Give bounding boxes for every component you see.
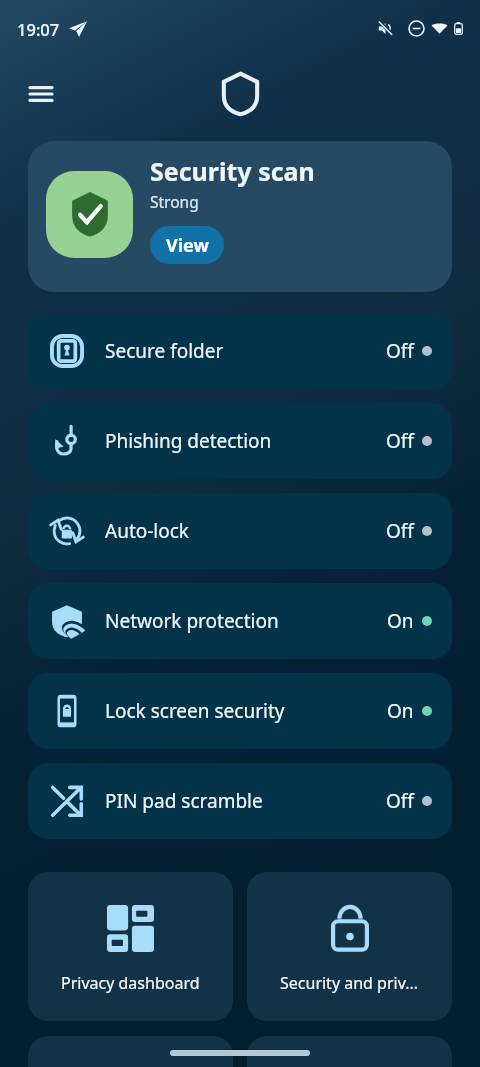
button[interactable]: Menu <box>19 72 63 116</box>
button[interactable]: Lock screen security <box>28 673 452 749</box>
button[interactable]: View <box>150 226 224 264</box>
button[interactable]: Security and priv... <box>247 872 452 1021</box>
staticText: 19:07 <box>17 18 60 40</box>
staticText: Lock screen security <box>105 698 387 724</box>
button[interactable]: Auto-lock <box>28 493 452 569</box>
button[interactable]: PIN pad scramble <box>28 763 452 839</box>
staticText: Auto-lock <box>105 518 386 544</box>
staticText: On <box>387 698 414 724</box>
staticText: PIN pad scramble <box>105 788 386 814</box>
staticText: Security and priv... <box>280 972 419 994</box>
staticText: On <box>387 608 414 634</box>
staticText: View <box>166 233 209 258</box>
staticText: Secure folder <box>105 338 386 364</box>
staticText: Strong <box>150 191 199 212</box>
staticText: Off <box>386 428 414 454</box>
button[interactable]: Privacy dashboard <box>28 872 233 1021</box>
button[interactable]: Network protection <box>28 583 452 659</box>
staticText: Network protection <box>105 608 387 634</box>
button[interactable]: Phishing detection <box>28 403 452 479</box>
staticText: Phishing detection <box>105 428 386 454</box>
button[interactable]: Secure folder <box>28 313 452 389</box>
staticText: Privacy dashboard <box>61 972 200 994</box>
staticText: Off <box>386 518 414 544</box>
button[interactable]: Security scan <box>28 141 452 292</box>
staticText: Off <box>386 338 414 364</box>
staticText: Security scan <box>150 154 315 188</box>
staticText: Off <box>386 788 414 814</box>
